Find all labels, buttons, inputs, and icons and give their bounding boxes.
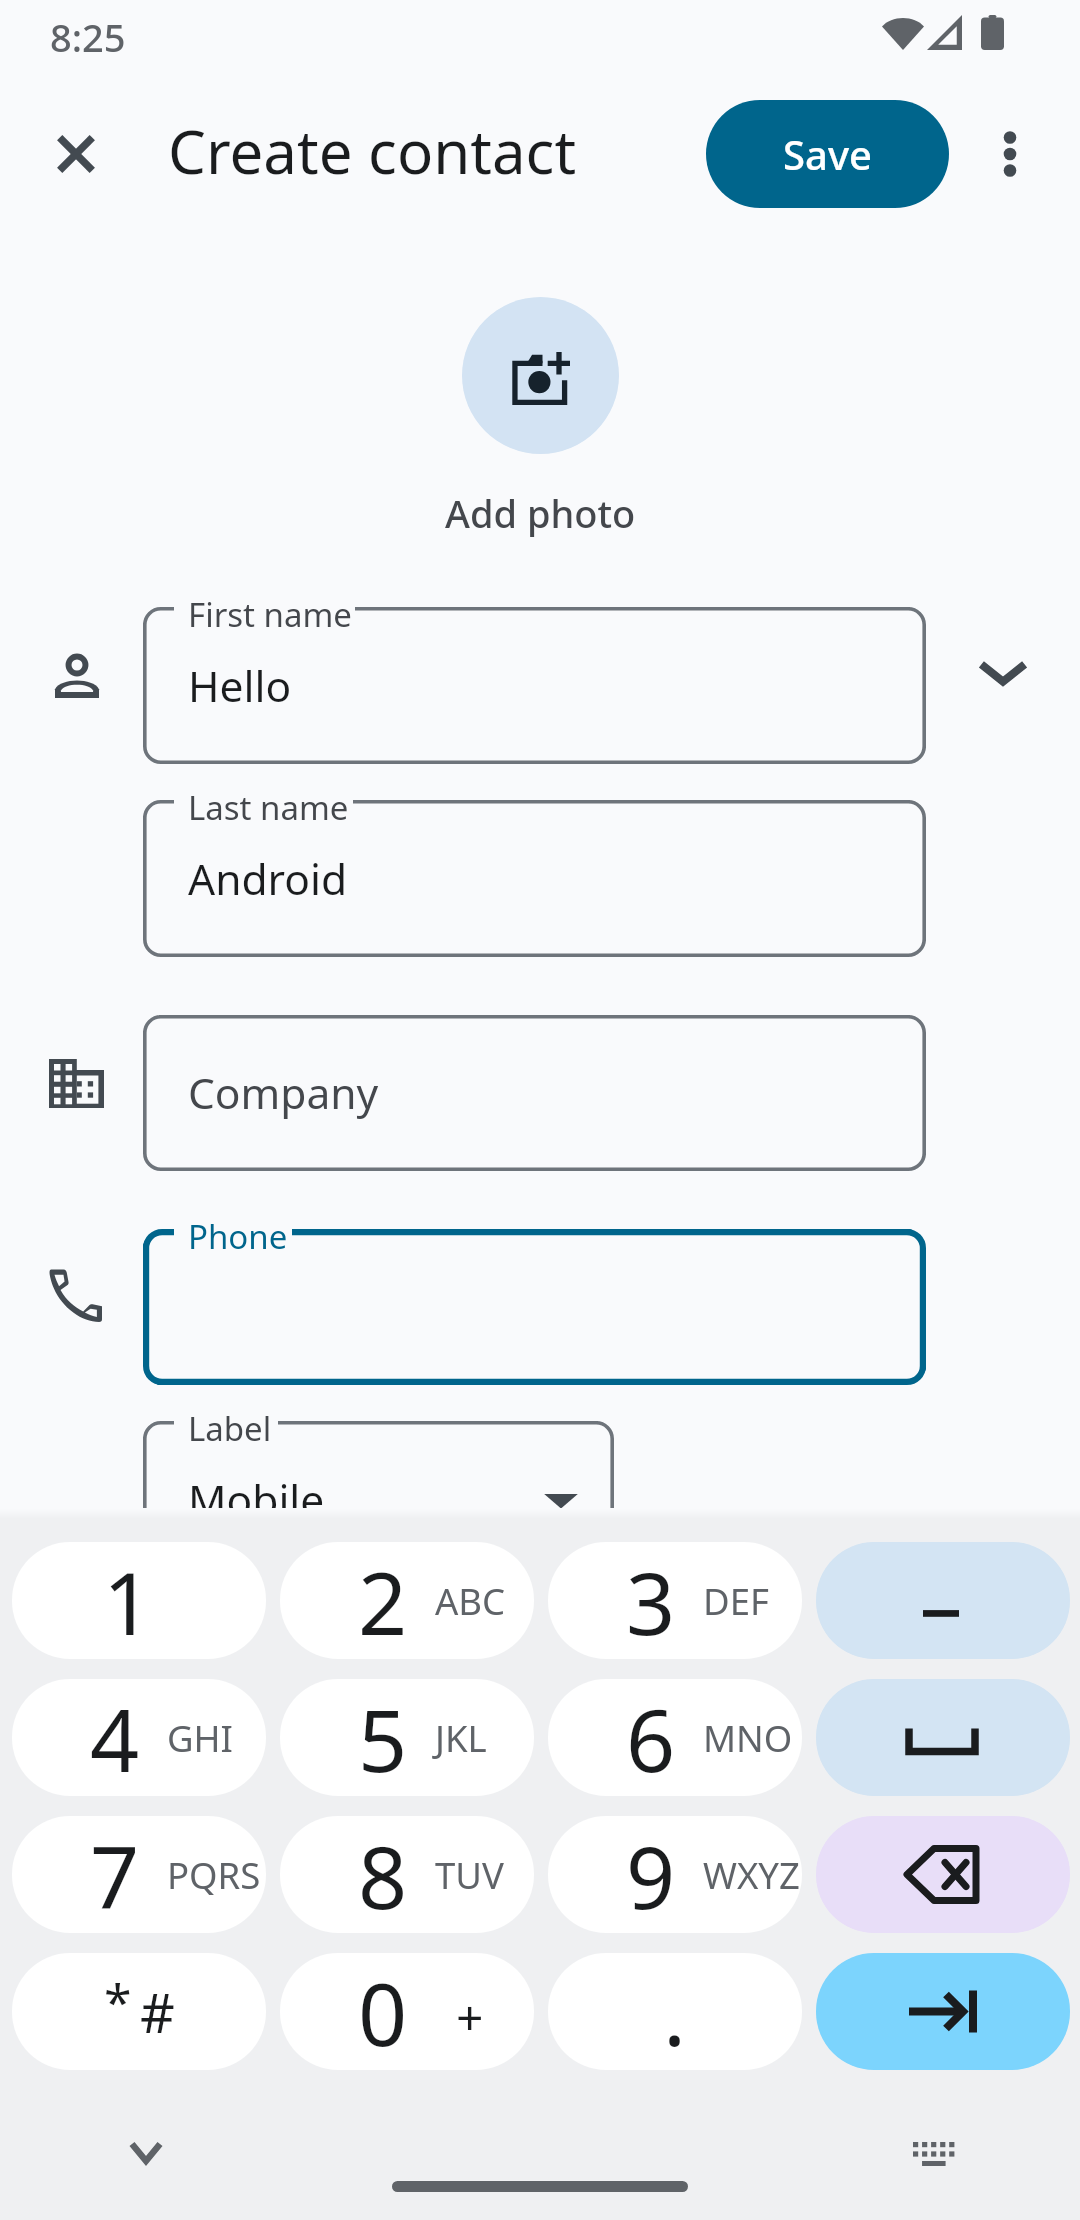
staticText: 8 — [358, 1817, 408, 1933]
staticText: Add photo — [445, 487, 636, 539]
staticText: Hello — [188, 657, 292, 715]
staticText: Phone — [188, 1214, 288, 1259]
staticText: TUV — [435, 1850, 504, 1900]
button[interactable]: 0 — [280, 1953, 534, 2070]
staticText: Last name — [188, 785, 349, 830]
button[interactable]: Expand name fields — [972, 641, 1034, 703]
button[interactable]: Last name — [143, 800, 926, 957]
staticText: 0 — [358, 1954, 408, 2070]
staticText: JKL — [435, 1713, 487, 1763]
other: Backspace — [816, 1816, 1070, 1933]
button[interactable]: 6 — [548, 1679, 802, 1796]
button[interactable]: 8 — [280, 1816, 534, 1933]
button[interactable]: 3 — [548, 1542, 802, 1659]
staticText: DEF — [703, 1576, 769, 1626]
button[interactable]: Space — [816, 1679, 1070, 1796]
button[interactable]: Phone — [143, 1229, 926, 1385]
staticText: 7 — [90, 1817, 140, 1933]
other: Space — [816, 1679, 1070, 1796]
staticText: + — [456, 1984, 484, 2049]
button[interactable]: Next field — [816, 1953, 1070, 2070]
button[interactable]: Add photo — [462, 297, 619, 454]
staticText: 2 — [358, 1543, 408, 1659]
button[interactable]: Save — [706, 100, 949, 208]
button[interactable]: 1 — [12, 1542, 266, 1659]
staticText: 3 — [626, 1543, 676, 1659]
staticText: Save — [783, 127, 872, 181]
staticText: Create contact — [168, 110, 577, 192]
staticText: * — [104, 1968, 132, 2036]
button[interactable]: First name — [143, 607, 926, 764]
button[interactable]: Backspace — [816, 1816, 1070, 1933]
button[interactable]: 2 — [280, 1542, 534, 1659]
staticText: Company — [188, 1064, 379, 1122]
button[interactable]: More options — [962, 106, 1058, 202]
button[interactable]: Switch keyboard — [899, 2119, 969, 2189]
staticText: 1 — [103, 1543, 153, 1659]
staticText: ABC — [435, 1576, 506, 1626]
staticText: 9 — [626, 1817, 676, 1933]
staticText: 8:25 — [50, 11, 126, 63]
staticText: # — [140, 1975, 175, 2049]
other: Next field — [816, 1953, 1070, 2070]
staticText: MNO — [703, 1713, 793, 1763]
button[interactable]: Hide keyboard — [111, 2117, 181, 2187]
staticText: GHI — [167, 1713, 233, 1763]
staticText: . — [663, 1954, 687, 2070]
staticText: 4 — [90, 1680, 140, 1796]
staticText: WXYZ — [703, 1850, 800, 1900]
button[interactable]: . — [548, 1953, 802, 2070]
button[interactable]: 4 — [12, 1679, 266, 1796]
other: Dash — [816, 1542, 1070, 1659]
button[interactable]: Label — [143, 1421, 614, 1578]
staticText: Mobile — [188, 1471, 325, 1529]
staticText: 5 — [358, 1680, 408, 1796]
staticText: 6 — [626, 1680, 676, 1796]
button[interactable]: 7 — [12, 1816, 266, 1933]
button[interactable]: Dash — [816, 1542, 1070, 1659]
button[interactable]: * — [12, 1953, 266, 2070]
staticText: Label — [188, 1406, 272, 1451]
button[interactable]: Close — [28, 106, 124, 202]
staticText: First name — [188, 592, 352, 637]
button[interactable]: Company — [143, 1015, 926, 1171]
button[interactable]: 5 — [280, 1679, 534, 1796]
staticText: Android — [188, 850, 348, 908]
button[interactable]: 9 — [548, 1816, 802, 1933]
staticText: PQRS — [167, 1850, 261, 1900]
